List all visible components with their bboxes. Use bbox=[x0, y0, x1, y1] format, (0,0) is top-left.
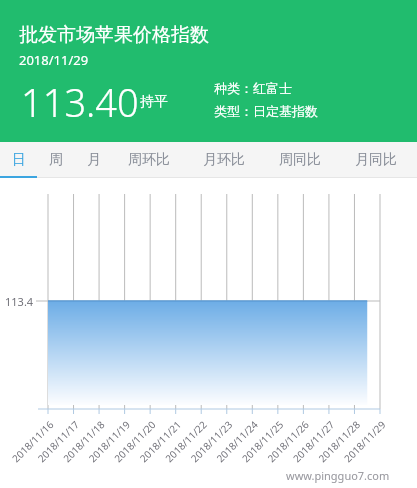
staticText: 月同比 bbox=[355, 151, 397, 169]
staticText: 类型：日定基指数 bbox=[214, 103, 318, 119]
staticText: 周 bbox=[49, 151, 63, 169]
staticText: 批发市场苹果价格指数 bbox=[19, 23, 209, 47]
staticText: 月环比 bbox=[203, 151, 245, 169]
button[interactable]: 周 bbox=[43, 142, 69, 178]
staticText: 日 bbox=[12, 151, 26, 169]
staticText: 持平 bbox=[140, 93, 168, 111]
button[interactable]: 周环比 bbox=[124, 142, 174, 178]
button[interactable]: 月同比 bbox=[351, 142, 401, 178]
staticText: 周同比 bbox=[279, 151, 321, 169]
button[interactable]: 月 bbox=[81, 142, 107, 178]
staticText: 月 bbox=[87, 151, 101, 169]
staticText: 周环比 bbox=[128, 151, 170, 169]
button[interactable]: 周同比 bbox=[275, 142, 325, 178]
button[interactable]: 日 bbox=[6, 142, 32, 178]
staticText: 2018/11/29 bbox=[19, 51, 89, 69]
staticText: 种类：红富士 bbox=[214, 80, 292, 96]
staticText: 113.40 bbox=[21, 76, 139, 128]
button[interactable]: 月环比 bbox=[199, 142, 249, 178]
